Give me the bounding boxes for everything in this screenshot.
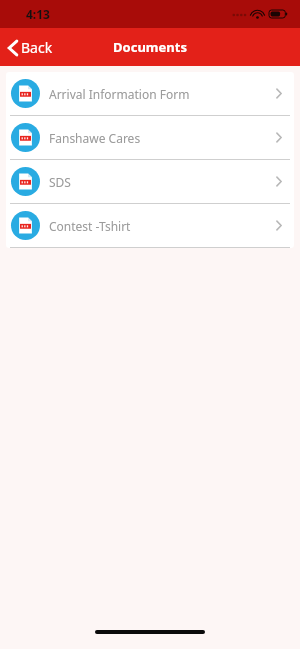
button[interactable]: PDF document [6, 116, 294, 159]
staticText: Arrival Information Form [49, 86, 276, 102]
other: PDF document [11, 123, 40, 152]
other: PDF document [11, 211, 40, 240]
staticText: Contest -Tshirt [49, 218, 276, 234]
staticText: Back [21, 38, 53, 57]
other: PDF document [11, 167, 40, 196]
staticText: 4:13 [26, 6, 50, 22]
staticText: SDS [49, 174, 276, 190]
button[interactable]: Back [0, 32, 63, 63]
button[interactable]: PDF document [6, 204, 294, 247]
button[interactable]: PDF document [6, 72, 294, 115]
other: PDF document [11, 79, 40, 108]
button[interactable]: PDF document [6, 160, 294, 203]
staticText: Documents [113, 38, 187, 56]
staticText: Fanshawe Cares [49, 130, 276, 146]
